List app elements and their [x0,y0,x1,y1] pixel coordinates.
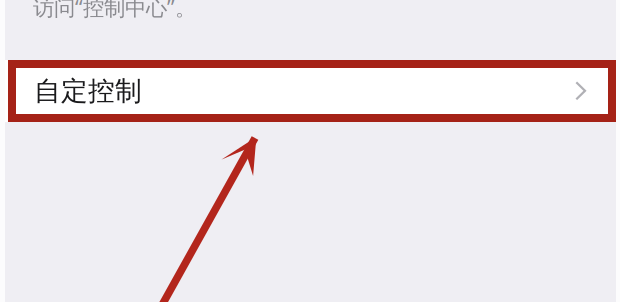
staticText: 自定控制 [34,75,142,107]
button[interactable]: 自定控制 [0,60,620,122]
staticText: 访问“控制中心”。 [33,0,196,21]
